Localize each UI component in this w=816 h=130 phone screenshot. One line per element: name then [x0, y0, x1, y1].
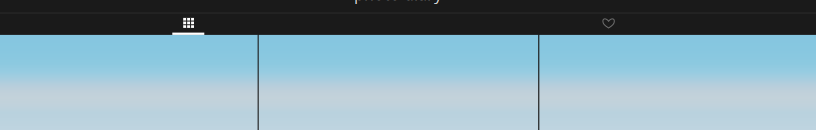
staticText: photo diary [354, 0, 442, 5]
